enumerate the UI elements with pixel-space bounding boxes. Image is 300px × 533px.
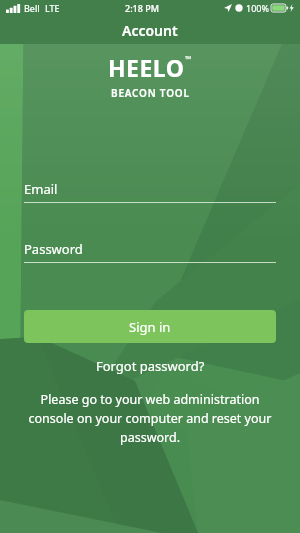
- staticText: Password: [24, 240, 83, 258]
- staticText: ™: [185, 53, 192, 64]
- staticText: Forgot password?: [96, 357, 205, 375]
- button[interactable]: Forgot password?: [24, 357, 276, 375]
- staticText: Please go to your web administration con…: [24, 391, 276, 446]
- staticText: Email: [24, 180, 58, 198]
- staticText: HEELO: [108, 52, 185, 83]
- button[interactable]: Email: [24, 180, 276, 203]
- button[interactable]: Sign in: [24, 310, 276, 343]
- button[interactable]: Password: [24, 240, 276, 263]
- staticText: 2:18 PM: [125, 2, 159, 14]
- staticText: 100%: [246, 2, 269, 14]
- staticText: Bell: [24, 2, 40, 14]
- staticText: Sign in: [129, 318, 171, 336]
- staticText: BEACON TOOL: [111, 86, 190, 100]
- staticText: Account: [122, 21, 178, 40]
- staticText: LTE: [45, 2, 60, 14]
